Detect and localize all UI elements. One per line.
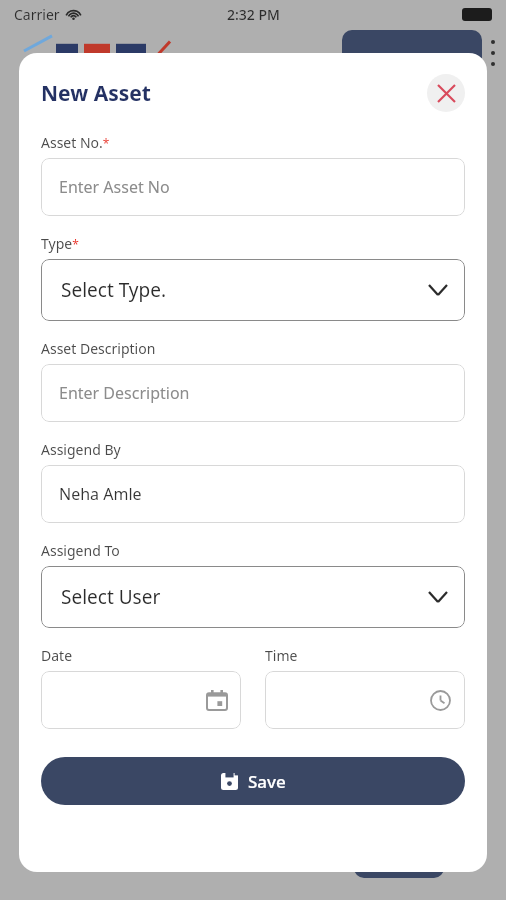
staticText: Assigend To: [41, 541, 120, 560]
button[interactable]: Neha Amle: [41, 465, 465, 523]
button[interactable]: Close: [427, 74, 465, 112]
staticText: Enter Description: [59, 382, 190, 404]
staticText: Time: [265, 646, 298, 665]
button[interactable]: Select Type.: [41, 259, 465, 321]
staticText: Asset No.*: [41, 133, 110, 152]
staticText: Select User: [61, 584, 161, 610]
button[interactable]: Pick time: [265, 671, 465, 729]
staticText: Date: [41, 646, 73, 665]
button[interactable]: Enter Asset No: [41, 158, 465, 216]
button[interactable]: Enter Description: [41, 364, 465, 422]
staticText: Type*: [41, 234, 79, 253]
staticText: Select Type.: [61, 277, 167, 303]
button[interactable]: Pick date: [41, 671, 241, 729]
button[interactable]: Save: [41, 757, 465, 805]
staticText: Enter Asset No: [59, 176, 170, 198]
button[interactable]: Select User: [41, 566, 465, 628]
button[interactable]: More options: [486, 40, 500, 66]
staticText: New Asset: [41, 79, 151, 108]
staticText: Neha Amle: [59, 483, 142, 505]
staticText: Asset Description: [41, 339, 156, 358]
staticText: 2:32 PM: [227, 5, 280, 24]
staticText: Save: [248, 770, 286, 793]
staticText: Assigend By: [41, 440, 121, 459]
button[interactable]: [342, 30, 482, 70]
staticText: Carrier: [14, 5, 60, 24]
